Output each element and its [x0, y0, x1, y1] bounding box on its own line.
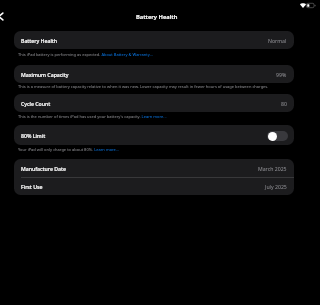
button[interactable]: 80% Limit toggle	[267, 131, 288, 141]
button[interactable]: First Use	[14, 178, 294, 195]
other: Battery	[306, 3, 316, 8]
staticText: Battery Health	[136, 13, 178, 21]
staticText: This iPad battery is performing as expec…	[18, 52, 300, 57]
button[interactable]: Cycle Count	[14, 94, 294, 112]
button[interactable]: 80% Limit	[14, 125, 294, 145]
button[interactable]: Manufacture Date	[14, 159, 294, 177]
staticText: Maximum Capacity	[21, 71, 69, 78]
staticText: Manufacture Date	[21, 165, 66, 172]
staticText: This is the number of times iPad has use…	[18, 114, 300, 119]
staticText: 80% Limit	[21, 132, 46, 139]
staticText: 80	[281, 100, 287, 107]
staticText: 99%	[276, 71, 287, 78]
other: Wi-Fi	[300, 3, 306, 8]
button[interactable]: Maximum Capacity	[14, 65, 294, 83]
staticText: March 2025	[258, 165, 287, 172]
staticText: Battery Health	[21, 37, 58, 44]
staticText: This is a measure of battery capacity re…	[18, 84, 300, 89]
staticText: Cycle Count	[21, 100, 51, 107]
staticText: Your iPad will only charge to about 80%.…	[18, 147, 300, 152]
button[interactable]: Back	[0, 9, 7, 23]
button[interactable]: Battery Health	[14, 31, 294, 49]
staticText: July 2025	[265, 183, 287, 190]
staticText: Normal	[268, 37, 287, 44]
staticText: First Use	[21, 183, 43, 190]
